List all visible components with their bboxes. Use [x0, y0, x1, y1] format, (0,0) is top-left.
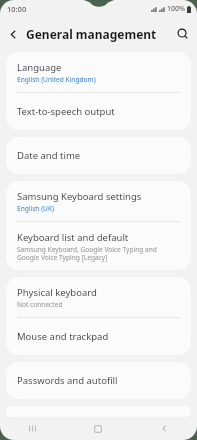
staticText: English (UK) [17, 204, 55, 213]
staticText: 100% [167, 4, 185, 14]
button[interactable]: Keyboard list and default [6, 222, 191, 270]
button[interactable]: Home [65, 417, 131, 440]
button[interactable]: Back [0, 21, 26, 47]
staticText: English (United Kingdom) [17, 75, 96, 84]
button[interactable]: Recents [0, 417, 65, 440]
staticText: Physical keyboard [17, 286, 97, 299]
staticText: Not connected [17, 300, 63, 309]
staticText: Text-to-speech output [17, 105, 115, 118]
staticText: Language [17, 61, 62, 74]
button[interactable]: Date and time [6, 137, 191, 174]
button[interactable]: Mouse and trackpad [6, 318, 191, 355]
staticText: Mouse and trackpad [17, 330, 109, 343]
button[interactable]: Back [131, 417, 197, 440]
staticText: Passwords and autofill [17, 374, 118, 387]
button[interactable]: Samsung Keyboard settings [6, 181, 191, 221]
button[interactable]: Search [169, 20, 197, 48]
staticText: 10:00 [7, 4, 27, 14]
staticText: Samsung Keyboard, Google Voice Typing an… [17, 245, 180, 262]
button[interactable]: Text-to-speech output [6, 93, 191, 130]
staticText: General management [26, 26, 157, 42]
staticText: Date and time [17, 149, 81, 162]
staticText: Samsung Keyboard settings [17, 190, 142, 203]
button[interactable]: Language [6, 52, 191, 92]
button[interactable]: Passwords and autofill [6, 362, 191, 399]
staticText: Keyboard list and default [17, 231, 129, 244]
button[interactable]: Physical keyboard [6, 277, 191, 317]
